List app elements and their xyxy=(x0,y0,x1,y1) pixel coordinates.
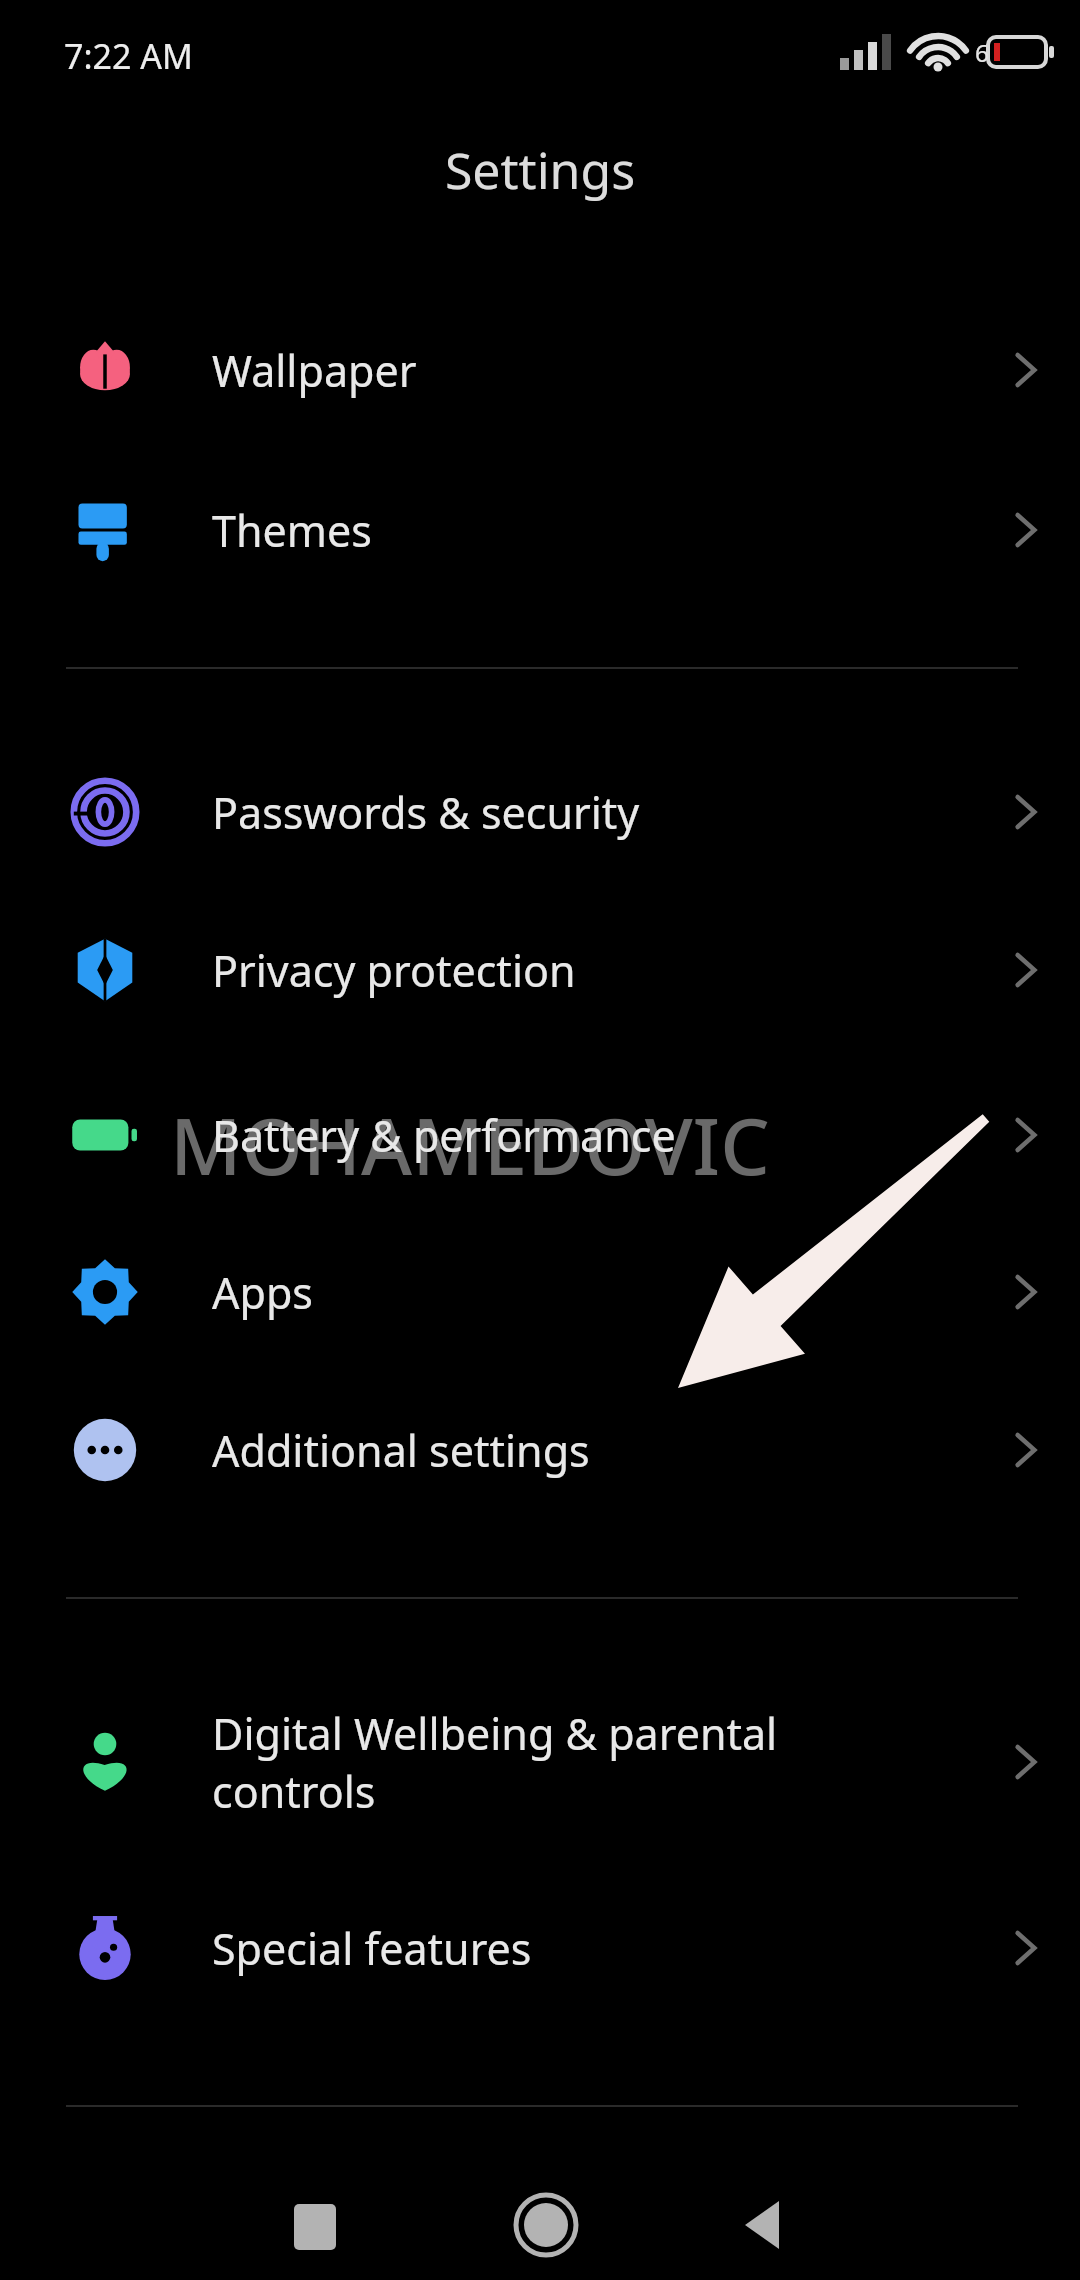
button[interactable]: Digital Wellbeing & parental controls xyxy=(0,1683,1080,1841)
staticText: Privacy protection xyxy=(212,941,996,1000)
button[interactable]: Special features xyxy=(0,1869,1080,2027)
button[interactable]: Battery & performance xyxy=(0,1056,1080,1214)
staticText: Digital Wellbeing & parental controls xyxy=(212,1704,996,1820)
staticText: 6 xyxy=(975,36,989,69)
staticText: 7:22 AM xyxy=(64,33,193,79)
button[interactable]: Wallpaper xyxy=(0,291,1080,449)
button[interactable]: Themes xyxy=(0,451,1080,609)
staticText: Wallpaper xyxy=(212,341,996,400)
button[interactable]: Back xyxy=(725,2188,799,2262)
staticText: MOHAMEDOVIC xyxy=(170,1092,770,1198)
button[interactable]: Recent apps xyxy=(280,2190,350,2260)
staticText: Themes xyxy=(212,501,996,560)
staticText: Special features xyxy=(212,1919,996,1978)
button[interactable]: Home xyxy=(505,2184,587,2266)
staticText: Apps xyxy=(212,1263,996,1322)
staticText: Passwords & security xyxy=(212,783,996,842)
staticText: Additional settings xyxy=(212,1421,996,1480)
staticText: Battery & performance xyxy=(212,1106,996,1165)
button[interactable]: Additional settings xyxy=(0,1371,1080,1529)
button[interactable]: Apps xyxy=(0,1213,1080,1371)
staticText: Settings xyxy=(0,136,1080,204)
button[interactable]: Privacy protection xyxy=(0,891,1080,1049)
button[interactable]: Passwords & security xyxy=(0,733,1080,891)
